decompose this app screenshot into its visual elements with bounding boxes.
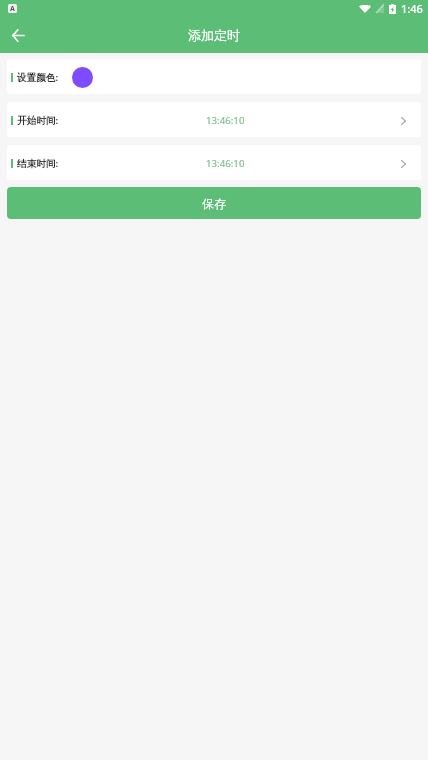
staticText: 保存 — [202, 196, 226, 211]
staticText: 13:46:10 — [206, 157, 245, 170]
staticText: 设置颜色: — [17, 71, 59, 84]
staticText: 13:46:10 — [206, 114, 245, 127]
button[interactable]: 开始时间: — [7, 102, 421, 137]
staticText: A — [10, 4, 15, 13]
button[interactable]: 设置颜色: — [7, 59, 421, 94]
button[interactable]: Back — [0, 17, 36, 53]
button[interactable]: 结束时间: — [7, 145, 421, 180]
staticText: 开始时间: — [17, 114, 59, 127]
button[interactable]: 保存 — [7, 187, 421, 219]
staticText: 结束时间: — [17, 157, 59, 170]
button[interactable]: Pick colour — [72, 67, 93, 88]
staticText: 1:46 — [401, 1, 423, 16]
staticText: 添加定时 — [188, 27, 240, 43]
